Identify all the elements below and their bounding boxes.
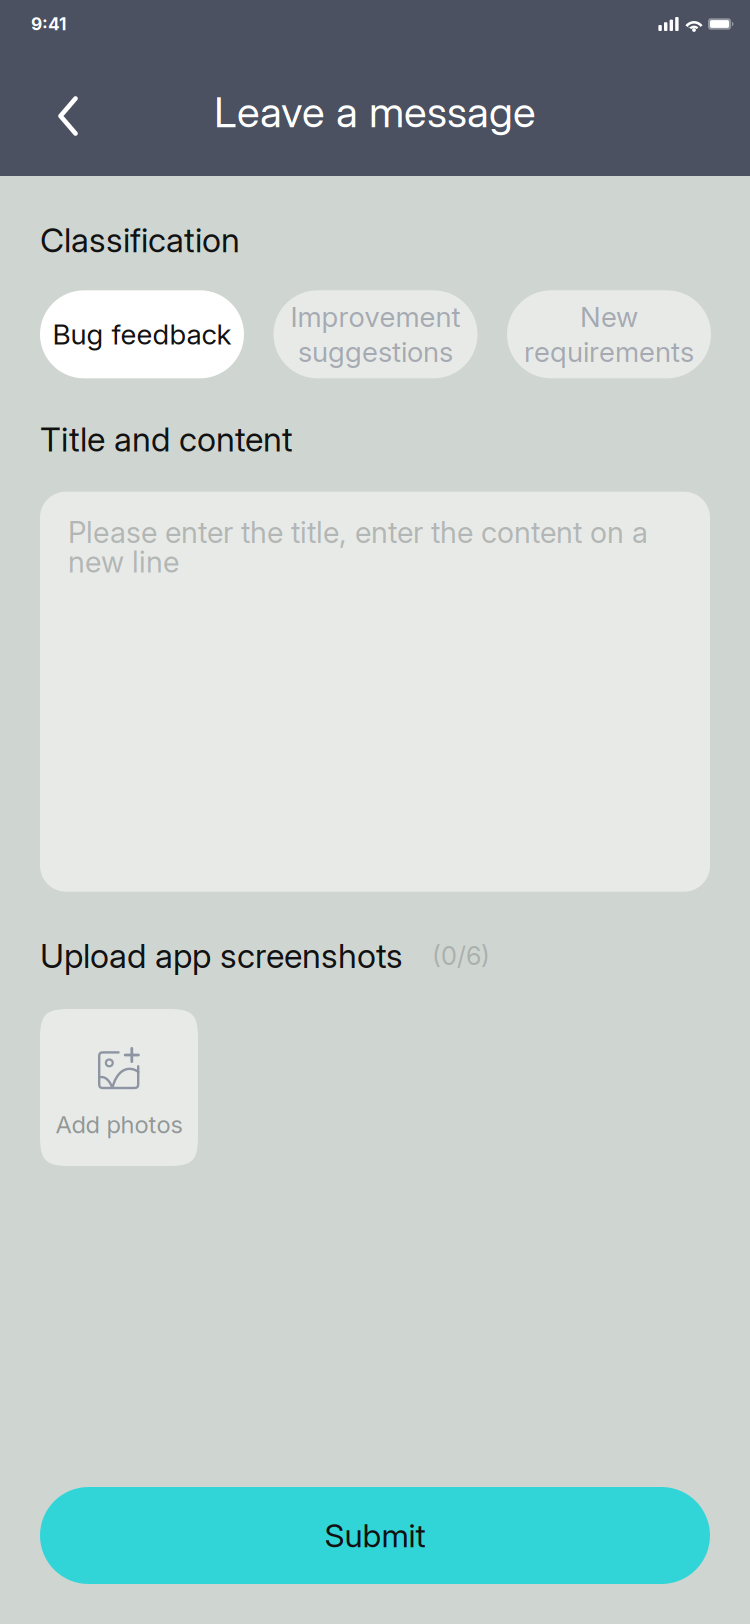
staticText: suggestions	[298, 335, 453, 369]
staticText: Upload app screenshots	[40, 936, 403, 976]
button[interactable]: Improvement	[273, 290, 477, 378]
staticText: (0/6)	[432, 940, 490, 971]
button[interactable]: Submit	[40, 1487, 710, 1584]
button[interactable]: Add photos	[40, 1009, 198, 1166]
staticText: New	[580, 300, 638, 334]
staticText: requirements	[524, 335, 694, 369]
staticText: Improvement	[290, 300, 460, 334]
button[interactable]: Bug feedback	[40, 290, 244, 378]
staticText: Please enter the title, enter the conten…	[68, 515, 648, 580]
staticText: Classification	[40, 220, 240, 260]
button[interactable]: Back	[0, 48, 136, 176]
staticText: 9:41	[31, 13, 66, 34]
button[interactable]: New	[507, 290, 711, 378]
staticText: Submit	[324, 1516, 425, 1555]
staticText: Leave a message	[214, 87, 536, 137]
staticText: Title and content	[40, 419, 293, 460]
staticText: Add photos	[55, 1110, 182, 1139]
staticText: Bug feedback	[52, 317, 231, 351]
